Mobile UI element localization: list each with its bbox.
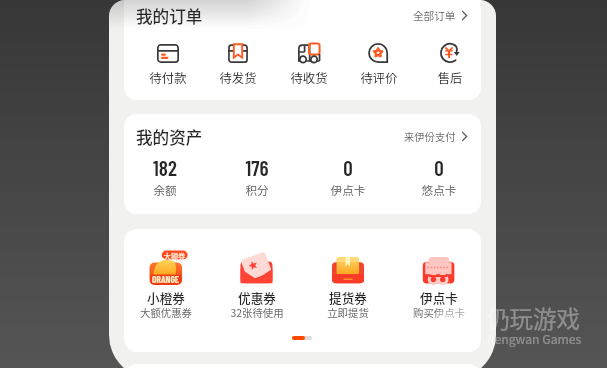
staticText: 182 [124,155,210,180]
staticText: 待付款 [138,69,198,87]
button[interactable]: 全部订单 [413,8,467,23]
button[interactable]: To be received [279,36,339,84]
button[interactable]: 182 [124,155,210,201]
button[interactable]: To review [349,36,409,84]
button[interactable]: 提货券 [303,243,393,325]
staticText: 0 [394,155,481,180]
button[interactable]: 来伊份支付 [404,129,467,144]
staticText: 32张待使用 [212,305,302,320]
staticText: 待发货 [208,69,268,87]
staticText: 立即提货 [303,305,393,320]
button[interactable]: Unpaid orders [138,36,198,84]
staticText: 优惠券 [212,288,302,306]
staticText: 伊点卡 [303,182,393,199]
staticText: 待收货 [279,69,339,87]
staticText: 全部订单 [413,8,456,23]
button[interactable]: After sales [420,36,480,84]
staticText: 0 [303,155,393,180]
staticText: ORANGE [150,274,181,285]
staticText: 来伊份支付 [404,129,456,144]
staticText: 176 [212,155,302,180]
staticText: 伊点卡 [394,288,481,306]
button[interactable]: 优惠券 [212,243,302,325]
staticText: 大额券 [162,251,187,261]
staticText: 售后 [420,69,480,87]
button[interactable]: 176 [212,155,302,201]
button[interactable]: 0 [394,155,481,201]
staticText: 我的订单 [136,4,203,28]
staticText: 余额 [124,182,210,199]
staticText: 提货券 [303,288,393,306]
staticText: 积分 [212,182,302,199]
button[interactable]: To be shipped [208,36,268,84]
button[interactable]: 大额券 [124,243,211,325]
staticText: 我的资产 [136,125,203,149]
staticText: 小橙券 [124,288,211,306]
button[interactable]: 0 [303,155,393,201]
staticText: 待评价 [349,69,409,87]
staticText: Rengwan Games [487,330,582,348]
button[interactable]: 伊点卡 [394,243,481,325]
staticText: 仍玩游戏 [486,301,580,335]
staticText: 购买伊点卡 [394,305,481,320]
staticText: 悠点卡 [394,182,481,199]
staticText: 大额优惠券 [124,305,211,320]
